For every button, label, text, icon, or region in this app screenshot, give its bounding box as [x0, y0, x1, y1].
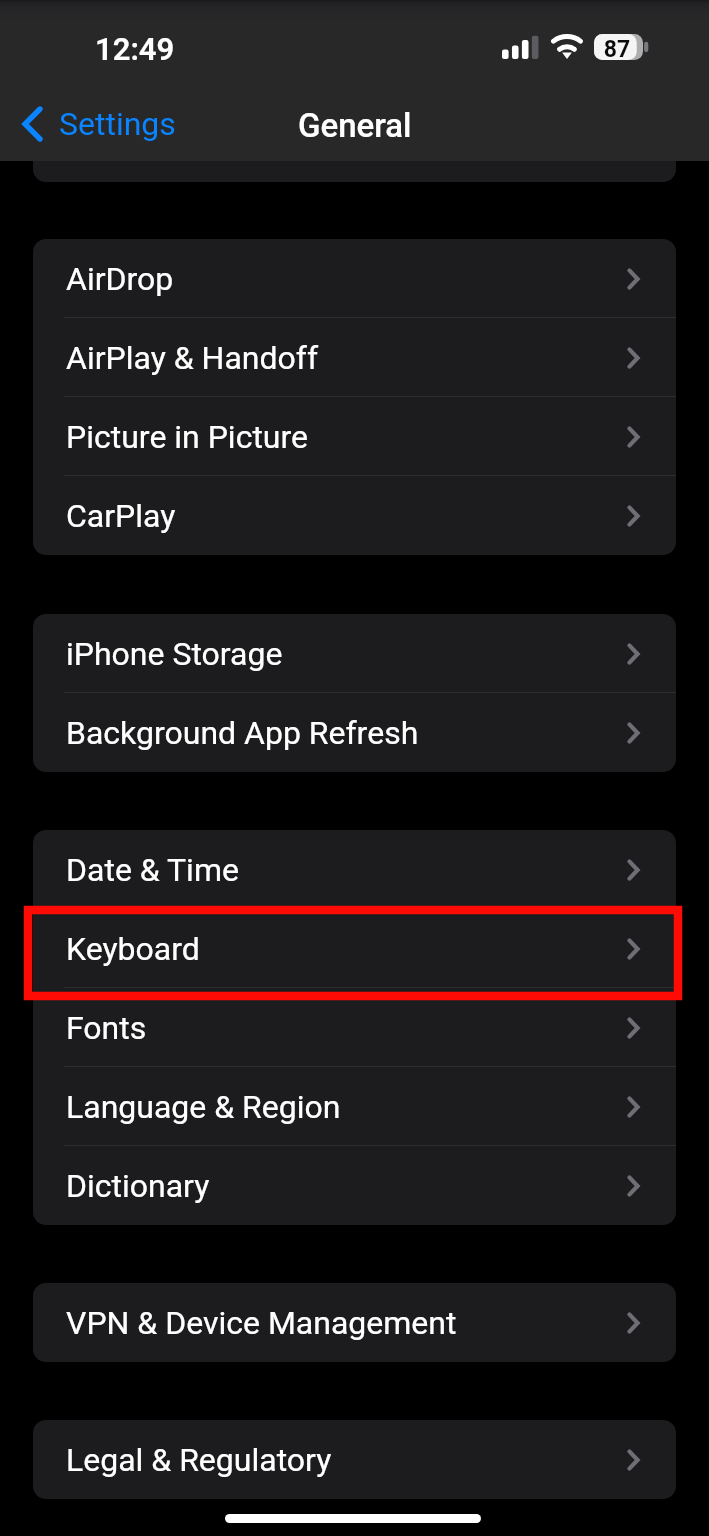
staticText: Background App Refresh	[66, 714, 419, 752]
button[interactable]: Legal & Regulatory	[33, 1420, 676, 1499]
button[interactable]: Background App Refresh	[33, 693, 676, 772]
button[interactable]: AirDrop	[33, 239, 676, 318]
staticText: CarPlay	[66, 497, 176, 535]
staticText: 87	[596, 36, 638, 63]
staticText: Legal & Regulatory	[66, 1441, 332, 1479]
staticText: General	[298, 106, 412, 145]
staticText: Keyboard	[66, 930, 200, 968]
button[interactable]: iPhone Storage	[33, 614, 676, 693]
staticText: Dictionary	[66, 1167, 210, 1205]
staticText: Language & Region	[66, 1088, 341, 1126]
button[interactable]: AirPlay & Handoff	[33, 318, 676, 397]
button[interactable]: Date & Time	[33, 830, 676, 909]
staticText: Fonts	[66, 1009, 147, 1047]
staticText: 12:49	[95, 31, 175, 67]
staticText: AirPlay & Handoff	[66, 339, 319, 377]
button[interactable]: CarPlay	[33, 476, 676, 555]
button[interactable]: Language & Region	[33, 1067, 676, 1146]
button[interactable]: Dictionary	[33, 1146, 676, 1225]
button[interactable]: Keyboard	[33, 909, 676, 988]
staticText: iPhone Storage	[66, 635, 283, 673]
button[interactable]: Back to Settings	[22, 95, 176, 153]
staticText: Picture in Picture	[66, 418, 309, 456]
button[interactable]: Fonts	[33, 988, 676, 1067]
staticText: AirDrop	[66, 260, 174, 298]
button[interactable]: Picture in Picture	[33, 397, 676, 476]
button[interactable]: VPN & Device Management	[33, 1283, 676, 1362]
staticText: VPN & Device Management	[66, 1304, 457, 1342]
staticText: Date & Time	[66, 851, 239, 889]
staticText: Settings	[59, 105, 176, 143]
